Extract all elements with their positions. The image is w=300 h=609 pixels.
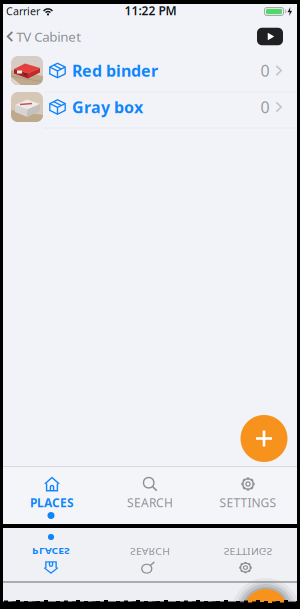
staticText: PLACES — [30, 494, 74, 510]
staticText: PLACES — [31, 545, 70, 559]
staticText: SETTINGS — [223, 545, 273, 559]
button[interactable]: Red binder — [3, 56, 297, 92]
button[interactable]: SEARCH — [101, 471, 199, 515]
staticText: Carrier — [6, 4, 40, 18]
button[interactable]: PLACES — [3, 471, 101, 515]
button[interactable]: Add item — [240, 415, 287, 462]
staticText: Gray box — [72, 96, 143, 118]
button[interactable]: Gray box — [3, 92, 297, 128]
staticText: Red binder — [72, 60, 158, 81]
button[interactable]: TV Cabinet — [4, 26, 84, 46]
staticText: SETTINGS — [219, 494, 276, 510]
staticText: SEARCH — [127, 494, 173, 510]
staticText: 0 — [260, 60, 269, 81]
staticText: SEARCH — [129, 545, 170, 559]
staticText: 11:22 PM — [124, 2, 176, 18]
staticText: 0 — [260, 96, 269, 118]
button[interactable]: Play video — [257, 28, 283, 45]
staticText: TV Cabinet — [16, 28, 81, 45]
button[interactable]: SETTINGS — [199, 471, 297, 515]
